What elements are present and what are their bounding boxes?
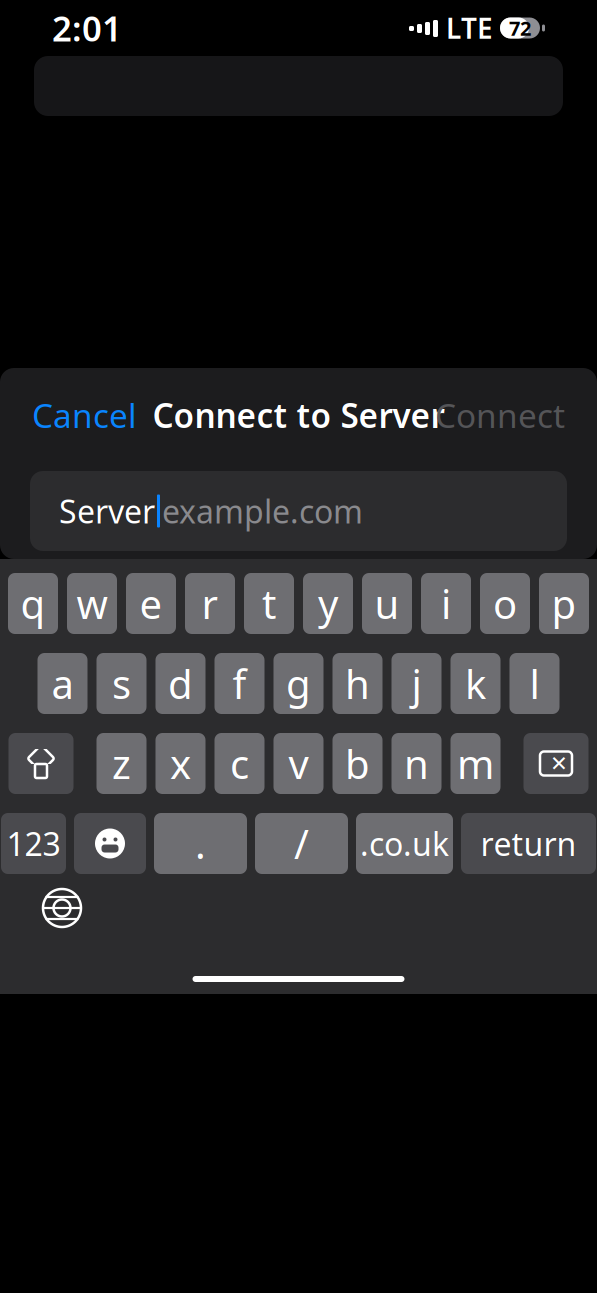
staticText: .co.uk <box>360 822 449 865</box>
staticText: example.com <box>162 490 363 532</box>
button[interactable]: z <box>96 733 146 794</box>
staticText: p <box>551 577 576 630</box>
button[interactable]: . <box>154 813 247 874</box>
staticText: f <box>232 657 246 710</box>
staticText: o <box>493 577 517 630</box>
button[interactable]: b <box>332 733 382 794</box>
button[interactable]: w <box>67 573 117 634</box>
staticText: s <box>112 657 131 710</box>
staticText: 2:01 <box>52 5 122 51</box>
staticText: 123 <box>6 822 60 865</box>
staticText: l <box>529 657 539 710</box>
staticText: b <box>345 737 370 790</box>
staticText: h <box>345 657 370 710</box>
button[interactable]: Connect <box>425 383 575 447</box>
button[interactable]: t <box>244 573 294 634</box>
staticText: return <box>480 822 576 865</box>
staticText: Cancel <box>32 393 137 437</box>
staticText: r <box>201 577 218 630</box>
button[interactable]: Emoji <box>74 813 146 874</box>
button[interactable]: s <box>96 653 146 714</box>
staticText: d <box>168 657 193 710</box>
staticText: e <box>139 577 162 630</box>
button[interactable]: return <box>461 813 596 874</box>
button[interactable]: i <box>421 573 471 634</box>
staticText: Connect <box>435 393 565 437</box>
staticText: q <box>20 577 45 630</box>
staticText: 72 <box>509 15 531 41</box>
staticText: w <box>76 577 107 630</box>
staticText: c <box>230 737 249 790</box>
staticText: i <box>441 577 451 630</box>
button[interactable]: Next keyboard <box>34 880 90 936</box>
staticText: Server <box>59 490 155 532</box>
staticText: / <box>294 817 309 870</box>
staticText: LTE <box>446 9 493 47</box>
button[interactable]: g <box>273 653 323 714</box>
button[interactable]: .co.uk <box>356 813 453 874</box>
staticText: k <box>465 657 486 710</box>
staticText: v <box>288 737 308 790</box>
button[interactable]: m <box>450 733 500 794</box>
button[interactable]: f <box>214 653 264 714</box>
button[interactable]: v <box>273 733 323 794</box>
button[interactable]: d <box>155 653 205 714</box>
button[interactable]: q <box>8 573 58 634</box>
button[interactable]: u <box>362 573 412 634</box>
button[interactable]: Cancel <box>22 383 147 447</box>
button[interactable]: j <box>391 653 441 714</box>
staticText: . <box>195 817 206 870</box>
button[interactable]: e <box>126 573 176 634</box>
button[interactable]: a <box>37 653 87 714</box>
button[interactable]: p <box>539 573 589 634</box>
button[interactable]: r <box>185 573 235 634</box>
button[interactable]: o <box>480 573 530 634</box>
staticText: Connect to Server <box>152 393 444 437</box>
button[interactable]: 123 <box>1 813 66 874</box>
staticText: t <box>262 577 276 630</box>
button[interactable]: l <box>509 653 559 714</box>
button[interactable]: n <box>391 733 441 794</box>
button[interactable]: / <box>255 813 348 874</box>
staticText: g <box>286 657 311 710</box>
staticText: u <box>374 577 399 630</box>
button[interactable]: y <box>303 573 353 634</box>
staticText: z <box>112 737 131 790</box>
button[interactable]: Shift <box>8 733 73 794</box>
staticText: j <box>411 657 421 710</box>
staticText: x <box>170 737 191 790</box>
button[interactable]: Delete <box>523 733 588 794</box>
button[interactable]: k <box>450 653 500 714</box>
staticText: n <box>404 737 429 790</box>
button[interactable]: x <box>155 733 205 794</box>
button[interactable]: h <box>332 653 382 714</box>
staticText: m <box>457 737 494 790</box>
staticText: a <box>51 657 73 710</box>
staticText: y <box>318 577 338 630</box>
button[interactable]: c <box>214 733 264 794</box>
staticText: ✕ <box>550 751 568 776</box>
